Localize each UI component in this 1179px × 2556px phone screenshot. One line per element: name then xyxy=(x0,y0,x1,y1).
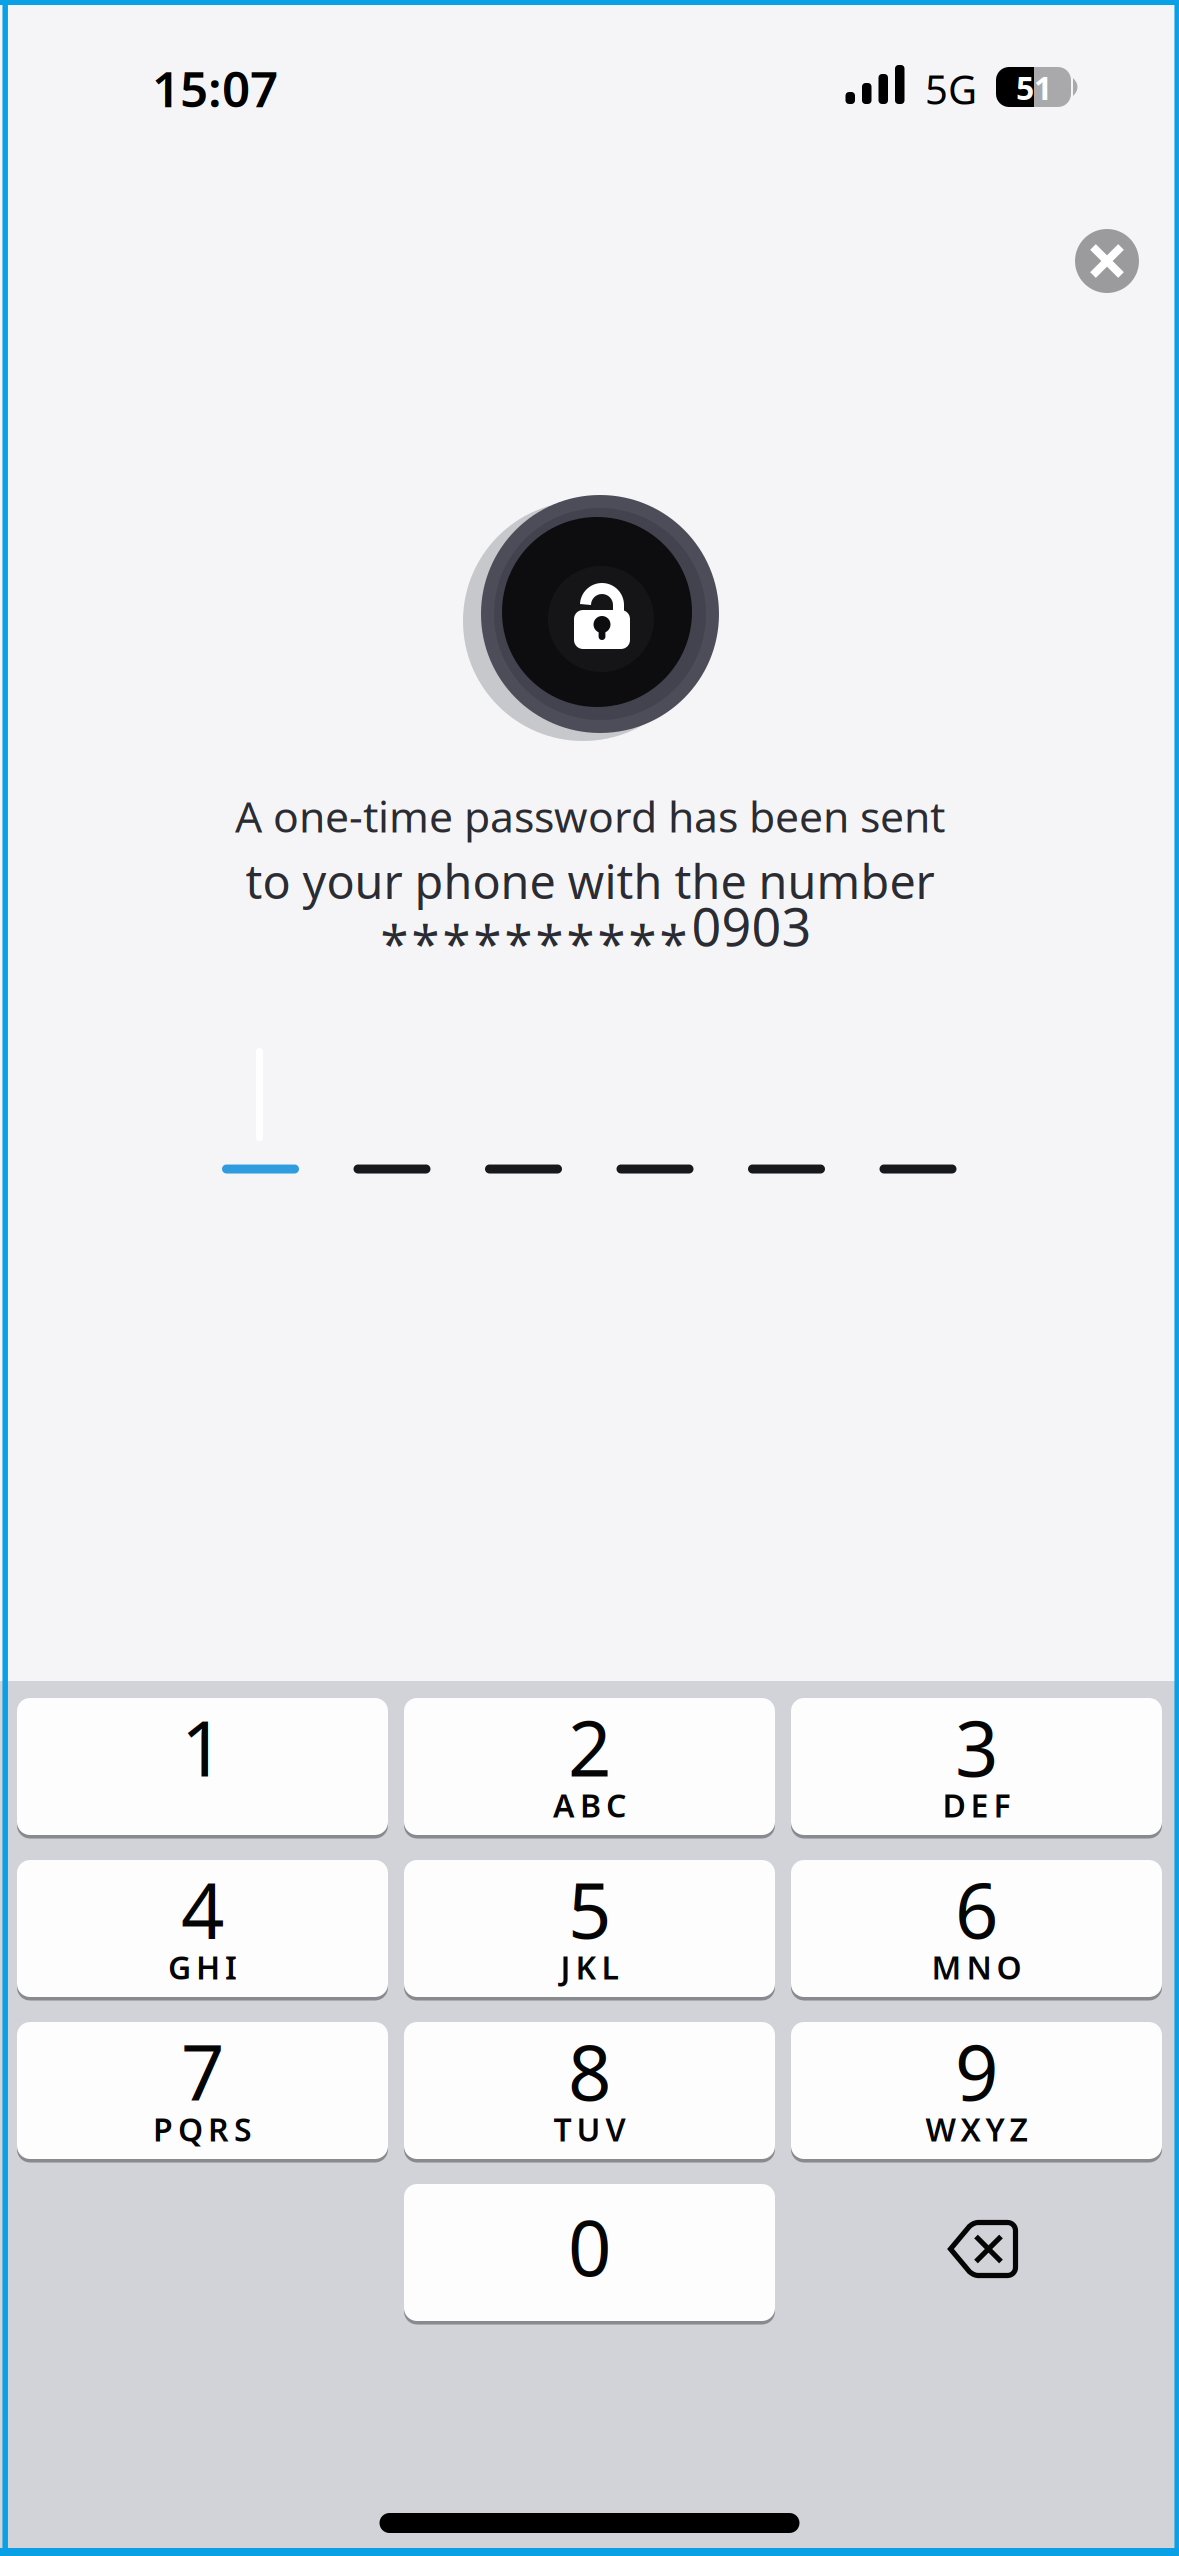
staticText: 0 xyxy=(568,2196,611,2297)
staticText: * xyxy=(659,909,687,977)
staticText: ABC xyxy=(553,1784,626,1826)
button[interactable]: Delete xyxy=(791,2184,1162,2321)
staticText: 9 xyxy=(955,2020,998,2121)
button[interactable]: 2 xyxy=(404,1698,775,1835)
staticText: 3 xyxy=(955,1696,998,1797)
staticText: JKL xyxy=(560,1946,618,1988)
button[interactable]: 0 xyxy=(404,2184,775,2321)
staticText: WXYZ xyxy=(925,2108,1027,2150)
staticText: * xyxy=(566,909,594,977)
staticText: * xyxy=(380,909,408,977)
staticText: 51 xyxy=(1016,66,1052,109)
button[interactable]: 3 xyxy=(791,1698,1162,1835)
staticText: 5G xyxy=(925,62,977,115)
staticText: 2 xyxy=(568,1696,611,1797)
button[interactable]: 9 xyxy=(791,2022,1162,2159)
button[interactable]: 8 xyxy=(404,2022,775,2159)
staticText: * xyxy=(597,909,625,977)
staticText: TUV xyxy=(553,2108,625,2150)
staticText: to your phone with the number xyxy=(245,850,934,912)
staticText: MNO xyxy=(931,1946,1021,1988)
staticText: 4 xyxy=(181,1858,224,1959)
staticText: 1 xyxy=(181,1696,224,1797)
button[interactable]: 1 xyxy=(17,1698,388,1835)
button[interactable]: 4 xyxy=(17,1860,388,1997)
staticText: 5 xyxy=(568,1858,611,1959)
button[interactable]: 7 xyxy=(17,2022,388,2159)
staticText: * xyxy=(535,909,563,977)
staticText: GHI xyxy=(168,1946,237,1988)
staticText: A one-time password has been sent xyxy=(235,788,945,844)
staticText: * xyxy=(504,909,532,977)
button[interactable]: Close xyxy=(1075,229,1139,293)
staticText: * xyxy=(442,909,470,977)
button[interactable]: 6 xyxy=(791,1860,1162,1997)
staticText: * xyxy=(628,909,656,977)
staticText: 8 xyxy=(568,2020,611,2121)
button[interactable]: 5 xyxy=(404,1860,775,1997)
staticText: PQRS xyxy=(153,2108,252,2150)
staticText: * xyxy=(411,909,439,977)
staticText: 6 xyxy=(955,1858,998,1959)
staticText: DEF xyxy=(942,1784,1010,1826)
staticText: * xyxy=(473,909,501,977)
staticText: 7 xyxy=(181,2020,224,2121)
staticText: 0903 xyxy=(691,891,811,961)
staticText: 15:07 xyxy=(152,55,278,121)
